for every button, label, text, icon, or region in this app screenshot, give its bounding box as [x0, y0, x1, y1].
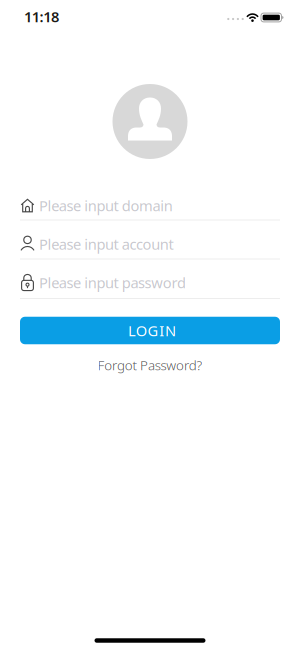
textField[interactable]: Please input account: [0, 234, 300, 254]
textField[interactable]: Please input password: [0, 273, 300, 292]
staticText: Forgot Password?: [97, 356, 202, 374]
textField[interactable]: Please input domain: [0, 196, 300, 215]
button[interactable]: LOGIN: [20, 317, 280, 344]
staticText: Please input domain: [39, 196, 173, 215]
button[interactable]: Forgot Password?: [97, 356, 202, 374]
staticText: LOGIN: [128, 321, 176, 340]
staticText: Please input password: [39, 273, 186, 292]
staticText: 11:18: [24, 7, 59, 26]
staticText: Please input account: [39, 234, 173, 254]
